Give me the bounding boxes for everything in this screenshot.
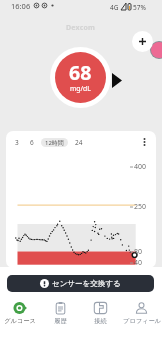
- button[interactable]: 6: [27, 136, 37, 149]
- staticText: 4G: [110, 3, 119, 12]
- staticText: 履歴: [54, 317, 67, 325]
- staticText: 250: [134, 202, 147, 212]
- staticText: 80: [134, 247, 143, 257]
- button[interactable]: プロフィール: [121, 298, 162, 325]
- staticText: 接続: [94, 317, 107, 325]
- staticText: Dexcom: [66, 23, 96, 33]
- staticText: mg/dL: [70, 84, 91, 93]
- button[interactable]: Profile: [151, 42, 162, 58]
- staticText: プロフィール: [123, 317, 161, 325]
- staticText: 400: [134, 162, 147, 172]
- button[interactable]: 3: [12, 136, 22, 149]
- staticText: 24: [75, 138, 83, 147]
- staticText: 68: [69, 59, 92, 86]
- button[interactable]: センサーを交換する: [7, 275, 154, 292]
- staticText: 6: [30, 138, 34, 147]
- staticText: 16:06: [11, 1, 31, 11]
- staticText: 12時間: [45, 139, 64, 147]
- staticText: 57%: [133, 3, 146, 12]
- button[interactable]: 接続: [80, 298, 121, 325]
- staticText: 3: [15, 138, 19, 147]
- staticText: 40: [134, 258, 143, 268]
- button[interactable]: More options: [136, 134, 152, 150]
- button[interactable]: Add event: [132, 31, 153, 52]
- button[interactable]: 12時間: [41, 138, 68, 147]
- button[interactable]: 24: [72, 136, 86, 149]
- staticText: グルコース: [4, 317, 36, 325]
- button[interactable]: グルコース: [0, 298, 40, 325]
- button[interactable]: 68: [55, 52, 106, 103]
- button[interactable]: 履歴: [40, 298, 80, 325]
- staticText: センサーを交換する: [52, 279, 121, 288]
